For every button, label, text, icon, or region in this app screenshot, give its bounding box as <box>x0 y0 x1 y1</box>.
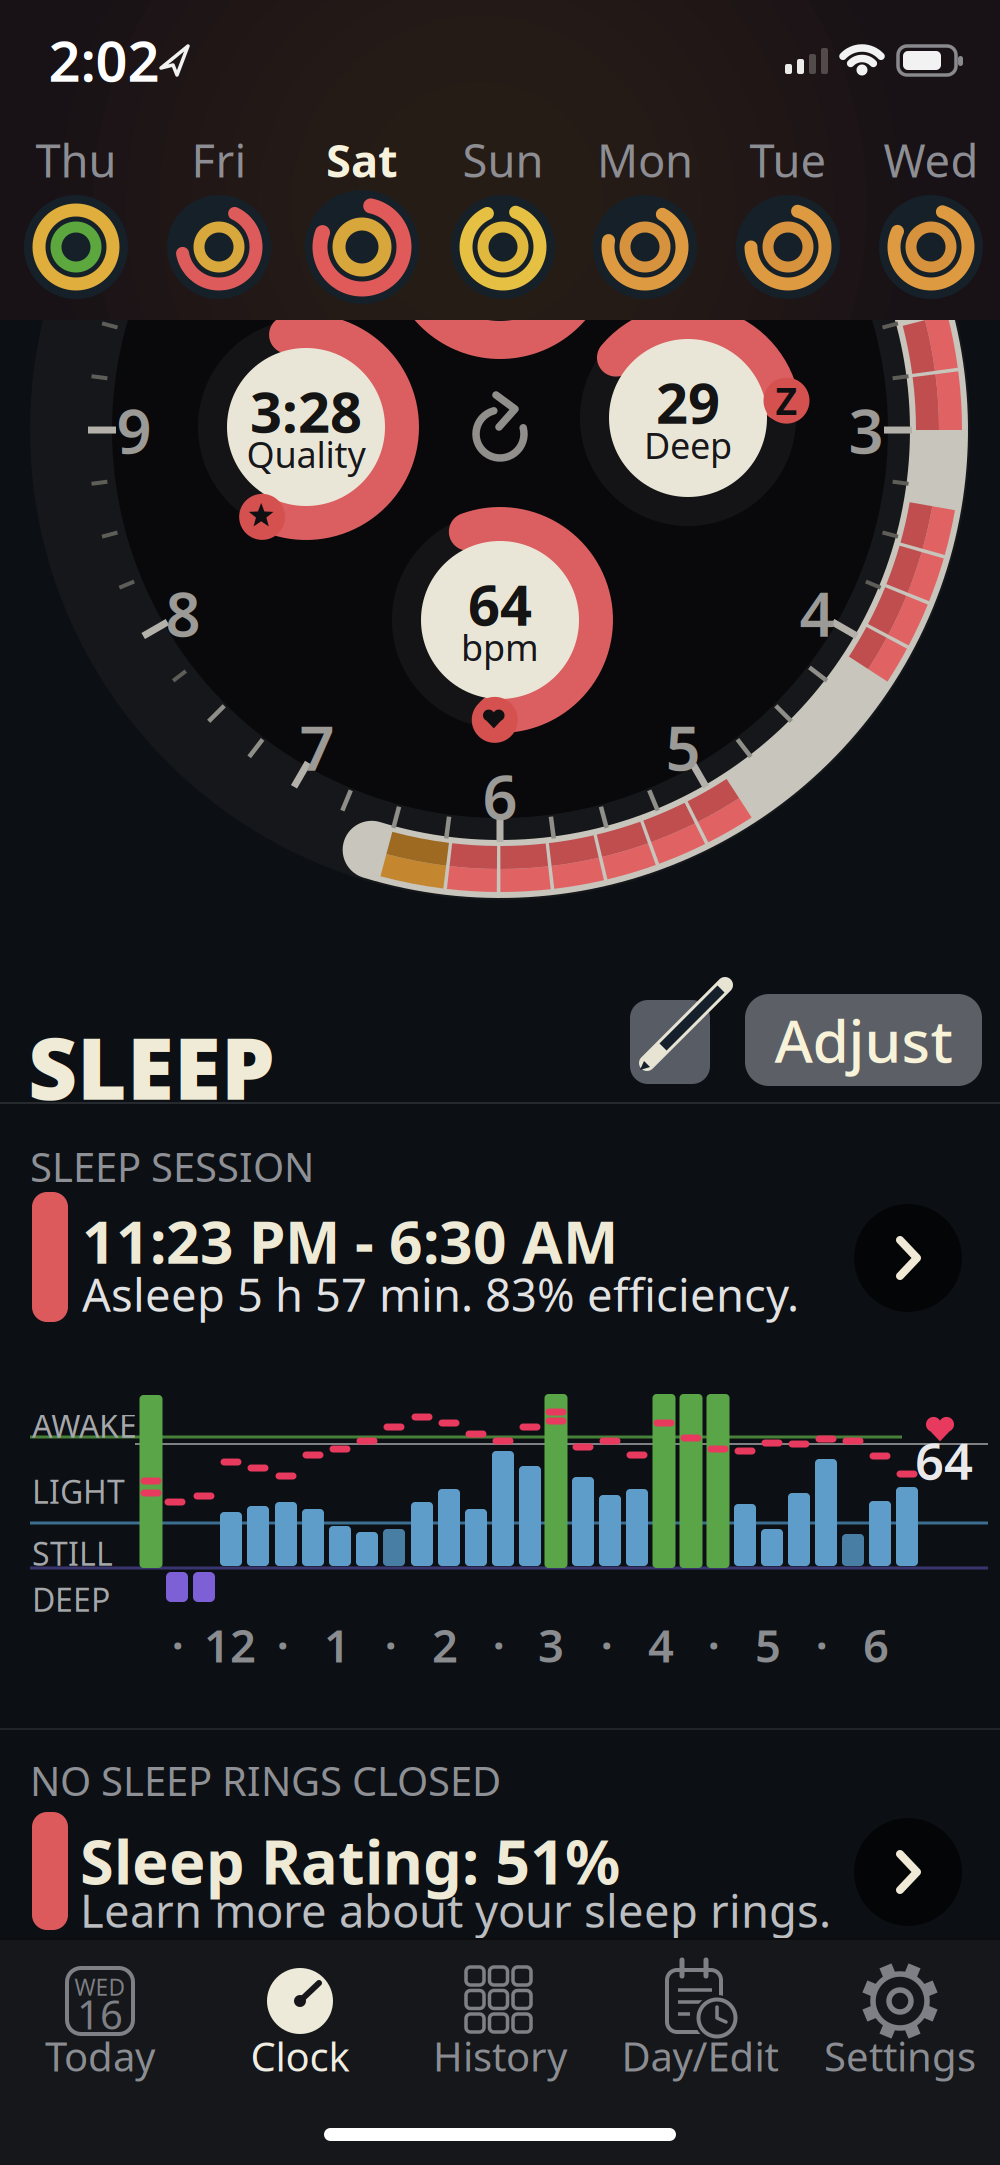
button[interactable] <box>465 399 535 469</box>
button[interactable]: Fri <box>147 130 290 320</box>
button[interactable]: Sleep Rating: 51% <box>0 1812 1000 1930</box>
button[interactable]: Sat <box>290 130 433 320</box>
button[interactable] <box>630 1000 710 1084</box>
staticText: Today <box>45 2029 155 2082</box>
staticText: Wed <box>883 130 978 190</box>
staticText: 3 <box>538 1615 564 1675</box>
staticText: SLEEP SESSION <box>30 1140 314 1193</box>
staticText: 4 <box>648 1615 674 1675</box>
staticText: · <box>492 1615 505 1675</box>
staticText: Adjust <box>774 1001 952 1079</box>
staticText: 64 <box>468 567 532 641</box>
staticText: LIGHT <box>32 1470 125 1512</box>
staticText: Z <box>775 376 797 425</box>
staticText: · <box>707 1615 720 1675</box>
staticText: · <box>171 1615 184 1675</box>
staticText: 5 <box>665 706 700 788</box>
staticText: 4 <box>799 572 834 654</box>
staticText: Day/Edit <box>621 2029 778 2082</box>
button[interactable]: Clock <box>200 1946 400 2086</box>
staticText: 12 <box>204 1615 256 1675</box>
button[interactable]: Sun <box>431 130 574 320</box>
staticText: Sun <box>462 130 543 190</box>
staticText: 16 <box>77 1987 123 2040</box>
button[interactable]: Adjust <box>745 994 982 1086</box>
staticText: 2 <box>432 1615 458 1675</box>
staticText: Deep <box>644 421 732 469</box>
staticText: SLEEP <box>28 1010 275 1123</box>
staticText: 6 <box>863 1615 889 1675</box>
staticText: 5 <box>755 1615 781 1675</box>
staticText: WED <box>74 1972 125 2002</box>
staticText: 7 <box>299 706 334 788</box>
staticText: NO SLEEP RINGS CLOSED <box>30 1754 501 1807</box>
staticText: 29 <box>656 365 720 439</box>
staticText: · <box>384 1615 397 1675</box>
staticText: · <box>276 1615 289 1675</box>
staticText: 3:28 <box>250 374 362 448</box>
staticText: AWAKE <box>32 1404 137 1446</box>
staticText: 2:02 <box>48 23 159 97</box>
staticText: 3 <box>848 389 883 471</box>
staticText: Fri <box>191 130 246 190</box>
staticText: 9 <box>116 389 151 471</box>
staticText: Sat <box>326 130 398 190</box>
staticText: · <box>600 1615 613 1675</box>
button[interactable]: 11:23 PM - 6:30 AM <box>0 1192 1000 1322</box>
button[interactable]: Day/Edit <box>600 1946 800 2086</box>
staticText: Thu <box>35 130 116 190</box>
staticText: Tue <box>749 130 826 190</box>
staticText: · <box>815 1615 828 1675</box>
button[interactable]: WED <box>0 1946 200 2086</box>
staticText: History <box>433 2029 567 2082</box>
staticText: DEEP <box>32 1578 110 1620</box>
staticText: 64 <box>915 1426 973 1494</box>
staticText: Settings <box>824 2029 976 2082</box>
button[interactable]: Mon <box>573 130 716 320</box>
staticText: bpm <box>461 623 539 671</box>
staticText: Clock <box>250 2029 349 2082</box>
staticText: Sleep Rating: 51% <box>80 1820 620 1901</box>
button[interactable]: Wed <box>859 130 1000 320</box>
staticText: 11:23 PM - 6:30 AM <box>82 1202 618 1280</box>
staticText: Learn more about your sleep rings. <box>80 1880 831 1940</box>
button[interactable]: Thu <box>4 130 147 320</box>
staticText: Quality <box>246 430 365 478</box>
staticText: 1 <box>324 1615 350 1675</box>
staticText: STILL <box>32 1532 113 1574</box>
staticText: 6 <box>482 755 517 837</box>
staticText: Mon <box>597 130 693 190</box>
staticText: 8 <box>165 572 200 654</box>
button[interactable]: Tue <box>716 130 859 320</box>
button[interactable]: History <box>400 1946 600 2086</box>
button[interactable]: Settings <box>800 1946 1000 2086</box>
staticText: Asleep 5 h 57 min. 83% efficiency. <box>82 1264 799 1324</box>
